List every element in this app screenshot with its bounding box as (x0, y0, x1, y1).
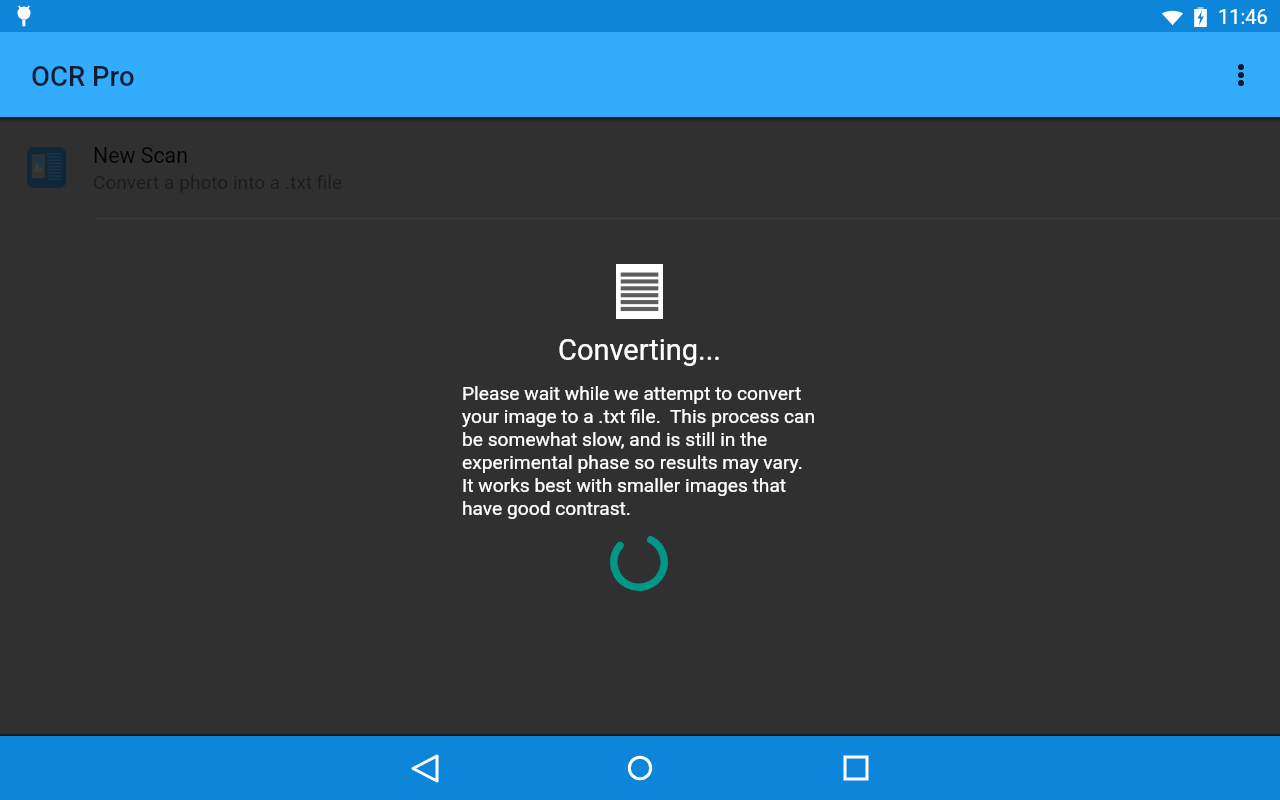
button[interactable]: Home (576, 736, 704, 800)
staticText: New Scan (93, 143, 188, 168)
button[interactable]: More options (1205, 32, 1277, 117)
staticText: Please wait while we attempt to convert … (462, 382, 816, 520)
staticText: Converting... (558, 333, 721, 367)
staticText: Convert a photo into a .txt file (93, 171, 343, 193)
button[interactable]: New Scan (0, 117, 1280, 218)
button[interactable]: Back (361, 736, 489, 800)
button[interactable]: Recent apps (792, 736, 920, 800)
staticText: OCR Pro (31, 60, 135, 92)
staticText: 11:46 (1218, 5, 1268, 28)
